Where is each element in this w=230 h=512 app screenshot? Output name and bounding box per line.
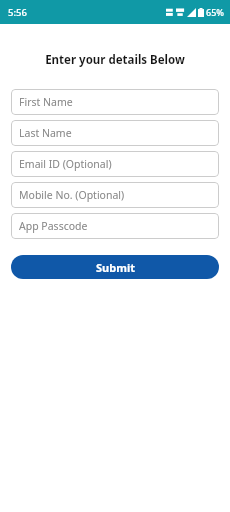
button[interactable]: App Passcode — [11, 213, 219, 239]
button[interactable]: Email ID (Optional) — [11, 151, 219, 177]
staticText: 65% — [206, 6, 224, 18]
staticText: App Passcode — [19, 219, 88, 233]
button[interactable]: Last Name — [11, 120, 219, 146]
staticText: Email ID (Optional) — [19, 157, 112, 171]
staticText: 5:56 — [8, 6, 27, 19]
button[interactable]: First Name — [11, 89, 219, 115]
button[interactable]: Submit — [11, 255, 219, 279]
staticText: Last Name — [19, 126, 72, 140]
staticText: Submit — [96, 260, 135, 275]
staticText: Mobile No. (Optional) — [19, 188, 125, 202]
staticText: Enter your details Below — [0, 52, 230, 68]
staticText: First Name — [19, 95, 73, 109]
button[interactable]: Mobile No. (Optional) — [11, 182, 219, 208]
